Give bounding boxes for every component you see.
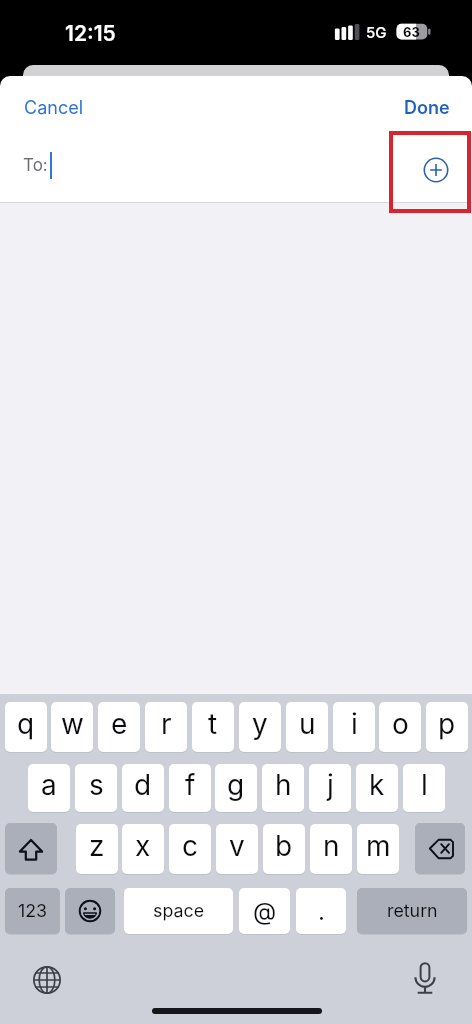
button[interactable]: e — [98, 702, 140, 752]
staticText: @ — [253, 897, 277, 926]
button[interactable]: Shift — [5, 823, 57, 874]
button[interactable]: v — [216, 824, 258, 874]
staticText: z — [89, 829, 105, 863]
button[interactable]: . — [296, 888, 346, 934]
button[interactable]: y — [239, 702, 281, 752]
staticText: space — [153, 900, 205, 922]
staticText: y — [252, 707, 268, 741]
staticText: g — [227, 768, 245, 802]
staticText: v — [229, 829, 245, 863]
staticText: To: — [23, 155, 48, 176]
button[interactable]: space — [124, 888, 233, 934]
button[interactable]: f — [169, 764, 211, 812]
staticText: p — [438, 707, 456, 741]
button[interactable]: a — [28, 764, 70, 812]
staticText: k — [369, 768, 385, 802]
staticText: d — [134, 768, 152, 802]
staticText: w — [61, 707, 84, 741]
staticText: return — [387, 900, 438, 922]
button[interactable]: k — [356, 764, 398, 812]
button[interactable]: o — [379, 702, 421, 752]
staticText: s — [89, 768, 104, 802]
staticText: x — [135, 829, 151, 863]
button[interactable]: Done — [390, 85, 464, 131]
staticText: c — [182, 829, 198, 863]
staticText: o — [392, 707, 409, 741]
staticText: Done — [404, 97, 450, 119]
button[interactable]: g — [215, 764, 257, 812]
staticText: r — [161, 707, 172, 741]
button[interactable]: n — [310, 824, 352, 874]
button[interactable]: j — [309, 764, 351, 812]
staticText: 5G — [366, 23, 387, 41]
staticText: 63 — [396, 24, 427, 40]
button[interactable]: d — [122, 764, 164, 812]
staticText: 12:15 — [65, 21, 116, 46]
button[interactable]: b — [263, 824, 305, 874]
button[interactable]: Change keyboard — [27, 960, 67, 1000]
button[interactable]: Emoji — [65, 888, 115, 934]
button[interactable]: i — [333, 702, 375, 752]
staticText: j — [327, 768, 334, 802]
button[interactable]: z — [76, 824, 118, 874]
button[interactable]: h — [262, 764, 304, 812]
button[interactable]: l — [403, 764, 445, 812]
button[interactable]: p — [426, 702, 468, 752]
staticText: Cancel — [24, 97, 84, 119]
button[interactable]: r — [145, 702, 187, 752]
button[interactable]: x — [122, 824, 164, 874]
button[interactable]: s — [75, 764, 117, 812]
staticText: u — [299, 707, 316, 741]
staticText: 123 — [18, 900, 48, 922]
button[interactable]: @ — [239, 888, 290, 934]
staticText: m — [366, 829, 391, 863]
button[interactable]: u — [286, 702, 328, 752]
button[interactable]: m — [357, 824, 399, 874]
button[interactable]: q — [5, 702, 47, 752]
button[interactable]: Dictate — [405, 959, 445, 999]
button[interactable]: 123 — [5, 888, 60, 934]
button[interactable]: Backspace — [415, 823, 465, 874]
staticText: b — [275, 829, 293, 863]
staticText: a — [41, 768, 57, 802]
staticText: e — [111, 707, 128, 741]
button[interactable]: c — [169, 824, 211, 874]
staticText: t — [208, 707, 218, 741]
staticText: n — [323, 829, 340, 863]
staticText: h — [275, 768, 292, 802]
button[interactable]: return — [357, 888, 467, 934]
staticText: q — [17, 707, 35, 741]
staticText: l — [421, 768, 428, 802]
staticText: i — [351, 707, 358, 741]
button[interactable]: w — [51, 702, 93, 752]
button[interactable]: t — [192, 702, 234, 752]
button[interactable]: Add contact — [416, 150, 456, 190]
staticText: . — [318, 897, 325, 926]
button[interactable]: Cancel — [8, 85, 100, 131]
staticText: f — [185, 768, 196, 802]
